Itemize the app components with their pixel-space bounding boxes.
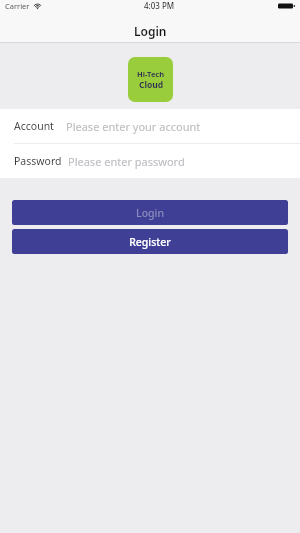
staticText: 4:03 PM xyxy=(144,0,175,11)
button[interactable]: Password xyxy=(0,144,300,178)
staticText: Please enter password xyxy=(68,154,185,169)
button[interactable]: Register xyxy=(12,229,288,254)
staticText: Please enter your account xyxy=(66,119,201,134)
staticText: Login xyxy=(134,23,167,39)
staticText: Password xyxy=(14,154,62,168)
button[interactable]: Account xyxy=(0,109,300,143)
staticText: Cloud xyxy=(139,79,164,91)
staticText: Account xyxy=(14,119,54,133)
staticText: Hi-Tech xyxy=(137,69,165,79)
button[interactable]: Login xyxy=(12,200,288,225)
staticText: Carrier xyxy=(5,1,30,11)
staticText: Register xyxy=(129,235,171,249)
staticText: Login xyxy=(136,206,164,220)
